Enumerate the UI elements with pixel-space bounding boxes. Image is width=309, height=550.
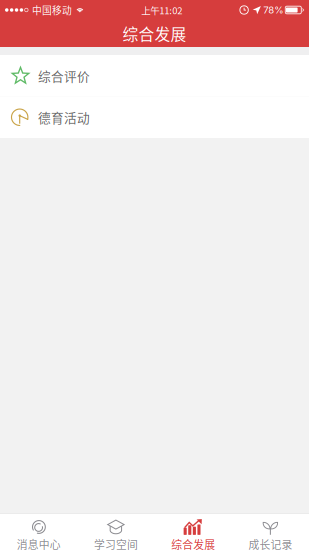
staticText: 78% [263,4,283,16]
button[interactable]: 消息中心 [0,514,77,550]
staticText: 上午11:02 [141,3,182,17]
staticText: 成长记录 [248,536,292,550]
button[interactable]: 成长记录 [232,514,309,550]
button[interactable]: 学习空间 [77,514,154,550]
staticText: 综合发展 [122,22,186,45]
staticText: 德育活动 [38,108,90,126]
button[interactable]: 综合评价 [0,55,309,96]
staticText: 综合评价 [38,67,90,85]
button[interactable]: 德育活动 [0,96,309,138]
staticText: 综合发展 [171,536,215,550]
staticText: 学习空间 [94,536,138,550]
button[interactable]: 综合发展 [154,514,232,550]
staticText: 消息中心 [17,536,61,550]
staticText: 中国移动 [32,3,72,17]
